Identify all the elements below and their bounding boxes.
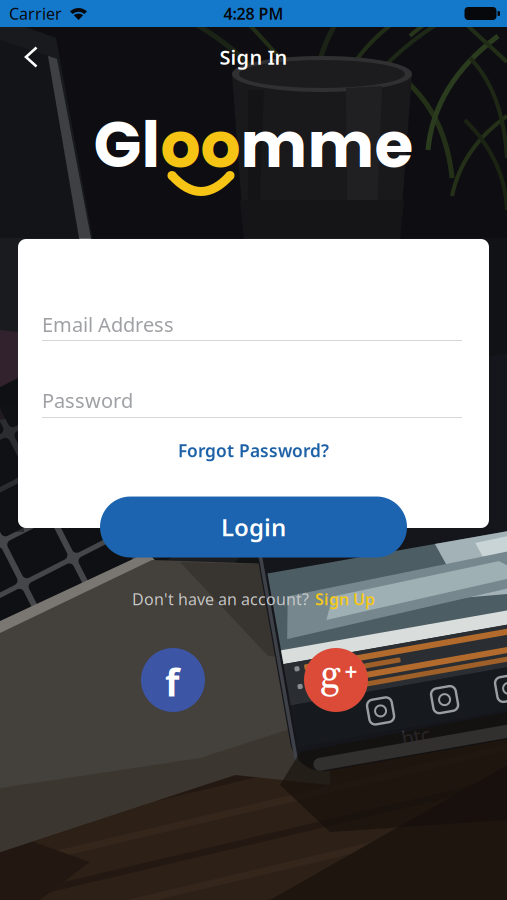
- staticText: Sign In: [219, 44, 287, 70]
- staticText: mme: [240, 101, 413, 189]
- staticText: Don't have an account?: [132, 588, 309, 610]
- staticText: f: [165, 657, 179, 707]
- staticText: oo: [160, 101, 240, 189]
- staticText: g: [320, 651, 340, 701]
- staticText: Sign Up: [315, 588, 375, 610]
- staticText: 4:28 PM: [223, 3, 283, 24]
- staticText: htc: [370, 710, 399, 738]
- button[interactable]: Sign in with Facebook: [141, 648, 205, 712]
- button[interactable]: Back: [8, 31, 53, 82]
- staticText: +: [344, 657, 357, 687]
- staticText: Forgot Password?: [178, 439, 329, 462]
- staticText: Carrier: [9, 3, 62, 24]
- staticText: Password: [42, 387, 133, 414]
- button[interactable]: Login: [100, 496, 407, 557]
- button[interactable]: Sign in with Google: [304, 648, 368, 712]
- staticText: Email Address: [42, 311, 174, 338]
- button[interactable]: Sign Up: [315, 588, 375, 610]
- staticText: Gl: [93, 101, 160, 189]
- staticText: Login: [221, 511, 286, 543]
- button[interactable]: Forgot Password?: [178, 439, 329, 462]
